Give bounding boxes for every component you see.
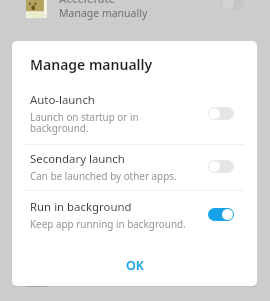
staticText: Manage manually	[59, 6, 148, 20]
button[interactable]: OK	[108, 251, 162, 280]
button[interactable]: Secondary launch	[12, 145, 257, 190]
staticText: Keep app running in background.	[30, 217, 186, 230]
button[interactable]: Auto-launch	[12, 92, 257, 144]
staticText: Accelerate	[59, 0, 116, 6]
staticText: Secondary launch	[30, 151, 125, 167]
staticText: Run in background	[30, 199, 132, 215]
button[interactable]: Secondary launch	[208, 160, 234, 173]
button[interactable]: Run in background	[208, 208, 234, 221]
button[interactable]: Auto-launch	[208, 107, 234, 120]
staticText: Can be launched by other apps.	[30, 169, 177, 182]
staticText: OK	[126, 257, 144, 274]
button[interactable]: Manage manually toggle	[221, 0, 244, 10]
button[interactable]: Run in background	[12, 191, 257, 239]
staticText: Auto-launch	[30, 92, 95, 108]
staticText: Manage manually	[30, 55, 153, 74]
staticText: Launch on startup or in background.	[30, 110, 139, 135]
